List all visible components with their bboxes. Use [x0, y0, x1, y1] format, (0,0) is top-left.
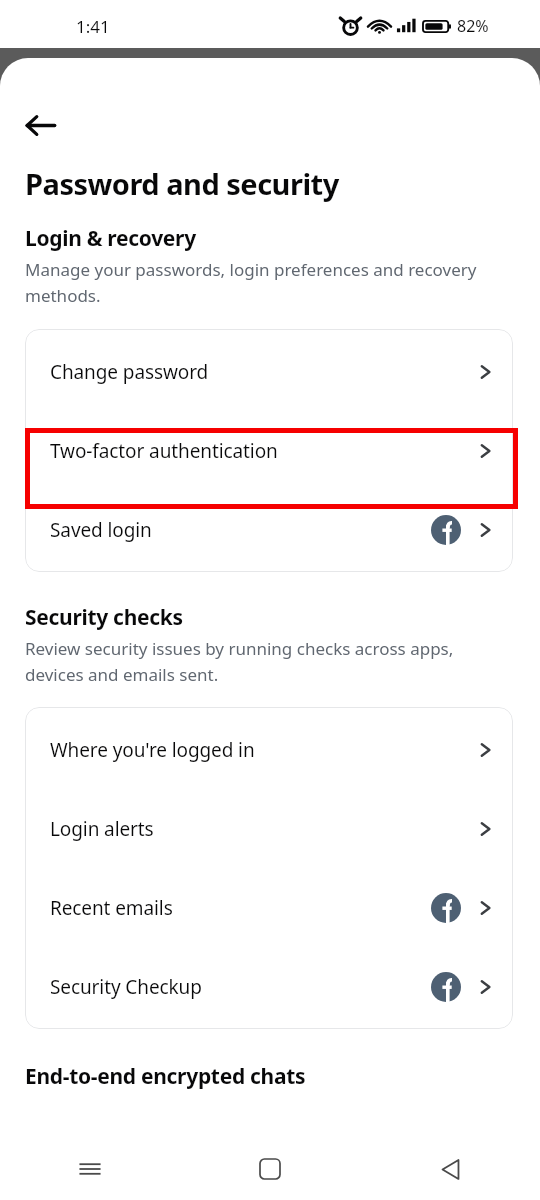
staticText: Security Checkup — [50, 974, 431, 1000]
button[interactable]: Where you're logged in — [25, 710, 513, 789]
staticText: Manage your passwords, login preferences… — [25, 258, 478, 307]
staticText: Change password — [50, 359, 475, 385]
button[interactable]: Back — [14, 99, 66, 151]
button[interactable]: Two-factor authentication — [25, 411, 513, 490]
button[interactable]: Change password — [25, 332, 513, 411]
staticText: Security checks — [25, 603, 183, 632]
staticText: Login & recovery — [25, 224, 196, 253]
button[interactable]: Back — [360, 1138, 540, 1200]
staticText: Recent emails — [50, 895, 431, 921]
staticText: 1:41 — [76, 15, 110, 38]
staticText: Saved login — [50, 517, 431, 543]
staticText: End-to-end encrypted chats — [25, 1062, 306, 1091]
staticText: Login alerts — [50, 816, 475, 842]
button[interactable]: Saved login — [25, 490, 513, 569]
button[interactable]: Home — [180, 1138, 360, 1200]
staticText: Review security issues by running checks… — [25, 637, 478, 686]
staticText: 82% — [457, 15, 489, 37]
staticText: Two-factor authentication — [50, 438, 475, 464]
button[interactable]: Recent apps — [0, 1138, 180, 1200]
staticText: Password and security — [25, 164, 339, 203]
button[interactable]: Recent emails — [25, 868, 513, 947]
staticText: Where you're logged in — [50, 737, 475, 763]
button[interactable]: Login alerts — [25, 789, 513, 868]
button[interactable]: Security Checkup — [25, 947, 513, 1026]
